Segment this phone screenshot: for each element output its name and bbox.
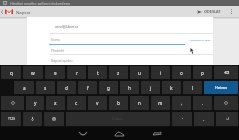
staticText: r [76, 70, 78, 76]
button[interactable]: n [130, 96, 149, 110]
staticText: a [23, 85, 26, 91]
button[interactable]: l [183, 81, 202, 94]
staticText: i [160, 70, 162, 76]
button[interactable]: u [130, 66, 149, 79]
button[interactable]: e [45, 66, 65, 79]
staticText: p [201, 70, 204, 76]
button[interactable]: z [109, 66, 128, 79]
staticText: h [128, 85, 131, 91]
staticText: b [117, 100, 120, 106]
staticText: , [181, 100, 183, 106]
button[interactable]: p [193, 66, 212, 79]
staticText: - [203, 117, 205, 122]
button[interactable]: Home [105, 127, 134, 140]
staticText: t [97, 70, 99, 76]
button[interactable]: h [120, 81, 139, 94]
staticText: vencl@24net.cz [55, 25, 79, 29]
staticText: w [31, 70, 35, 76]
staticText: o [180, 70, 183, 76]
staticText: n [138, 100, 141, 106]
button[interactable]: Recent apps [142, 127, 171, 140]
button[interactable]: w [23, 66, 43, 79]
button[interactable]: Shift [214, 96, 238, 110]
button[interactable]: q [1, 66, 21, 79]
button[interactable]: . [193, 96, 212, 110]
staticText: g [107, 85, 110, 91]
staticText: s [44, 85, 47, 91]
staticText: Komu [51, 38, 60, 42]
staticText: k [170, 85, 173, 91]
button[interactable]: x [46, 96, 65, 110]
button[interactable]: c [67, 96, 86, 110]
button[interactable]: Emoticon [216, 112, 238, 126]
button[interactable]: i [151, 66, 170, 79]
staticText: u [138, 70, 141, 76]
staticText: e [54, 70, 57, 76]
button[interactable]: Voice input [23, 112, 42, 126]
button[interactable]: g [99, 81, 118, 94]
button[interactable]: f [78, 81, 97, 94]
staticText: ODESLAT [204, 9, 221, 14]
button[interactable]: b [109, 96, 128, 110]
staticText: Napsat [16, 9, 31, 15]
button[interactable]: More options [227, 7, 236, 16]
button[interactable]: Backspace [214, 66, 238, 79]
staticText: l [192, 85, 194, 91]
staticText: Napsat zprávu [51, 59, 73, 63]
staticText: + KOPIE/SKRYTÁ KOPIE [189, 39, 211, 42]
button[interactable]: d [57, 81, 76, 94]
button[interactable]: a [14, 81, 34, 94]
button[interactable]: o [172, 66, 191, 79]
button[interactable]: Shift [1, 96, 24, 110]
button[interactable]: ODESLAT [195, 8, 223, 15]
button[interactable]: , [172, 96, 191, 110]
staticText: v [96, 100, 99, 106]
staticText: c [75, 100, 78, 106]
button[interactable]: ?123 [1, 112, 21, 126]
button[interactable]: r [67, 66, 86, 79]
button[interactable]: Back [0, 7, 4, 16]
staticText: d [65, 85, 68, 91]
staticText: x [54, 100, 57, 106]
button[interactable]: k [162, 81, 181, 94]
staticText: m [158, 100, 163, 106]
staticText: Hledání nového zařízení dokončeno [10, 1, 71, 6]
button[interactable]: Back [68, 127, 97, 140]
button[interactable]: s [36, 81, 55, 94]
staticText: j [150, 85, 152, 91]
staticText: ?123 [8, 117, 15, 121]
button[interactable]: v [88, 96, 107, 110]
button[interactable]: j [141, 81, 160, 94]
staticText: ' [182, 117, 183, 122]
button[interactable]: y [26, 96, 44, 110]
button[interactable]: Emoji [44, 112, 64, 126]
staticText: y [34, 100, 37, 106]
staticText: Čeština [112, 117, 124, 121]
button[interactable]: t [88, 66, 107, 79]
staticText: z [117, 70, 120, 76]
staticText: Předmět [51, 49, 64, 53]
button[interactable]: ' [172, 112, 192, 126]
staticText: f [87, 85, 89, 91]
button[interactable]: Hotovo [204, 81, 238, 94]
staticText: . [202, 100, 204, 106]
button[interactable]: - [194, 112, 214, 126]
staticText: q [10, 70, 13, 76]
staticText: Hotovo [215, 85, 228, 90]
button[interactable]: m [151, 96, 170, 110]
staticText: :-) [226, 117, 229, 121]
